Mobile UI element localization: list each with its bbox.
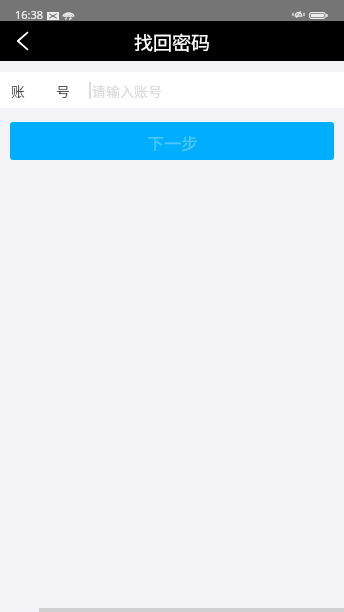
staticText: 号 [56, 81, 70, 101]
staticText: 16:38 [15, 7, 44, 22]
staticText: 请输入账号 [92, 81, 162, 101]
button[interactable]: 下一步 [10, 122, 334, 160]
staticText: 找回密码 [134, 28, 211, 56]
staticText: 下一步 [147, 130, 198, 155]
button[interactable]: 账 [0, 72, 344, 108]
staticText: 账 [11, 81, 25, 101]
button[interactable]: Back [0, 21, 44, 61]
